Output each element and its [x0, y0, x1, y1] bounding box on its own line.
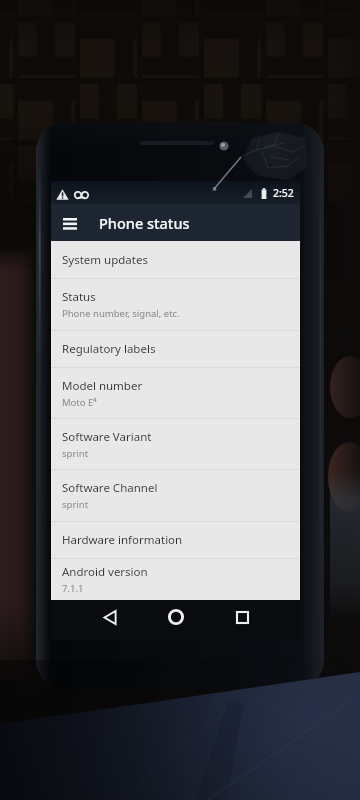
button[interactable]: Software Channel	[51, 470, 300, 521]
staticText: Android version	[62, 564, 148, 580]
staticText: Hardware information	[62, 532, 183, 548]
button[interactable]: Hardware information	[51, 522, 300, 558]
staticText: Phone status	[99, 213, 190, 233]
staticText: Moto E⁴	[62, 396, 97, 409]
button[interactable]: Model number	[51, 368, 300, 418]
staticText: sprint	[62, 447, 89, 460]
staticText: Phone number, signal, etc.	[62, 307, 180, 320]
staticText: Regulatory labels	[62, 341, 156, 357]
button[interactable]: System updates	[51, 241, 300, 278]
staticText: System updates	[62, 252, 148, 268]
button[interactable]: Recent apps	[226, 601, 258, 633]
button[interactable]: Open navigation drawer	[57, 210, 83, 236]
staticText: Model number	[62, 378, 143, 394]
staticText: 2:52	[273, 186, 294, 200]
button[interactable]: Status	[51, 279, 300, 330]
button[interactable]: Software Variant	[51, 419, 300, 469]
staticText: Software Variant	[62, 429, 152, 445]
button[interactable]: Back	[94, 601, 126, 633]
staticText: Status	[62, 289, 96, 305]
staticText: 7.1.1	[62, 582, 84, 595]
button[interactable]: Android version	[51, 559, 300, 600]
button[interactable]: Regulatory labels	[51, 331, 300, 367]
staticText: sprint	[62, 498, 89, 511]
button[interactable]: Home	[160, 601, 192, 633]
staticText: Software Channel	[62, 480, 158, 496]
